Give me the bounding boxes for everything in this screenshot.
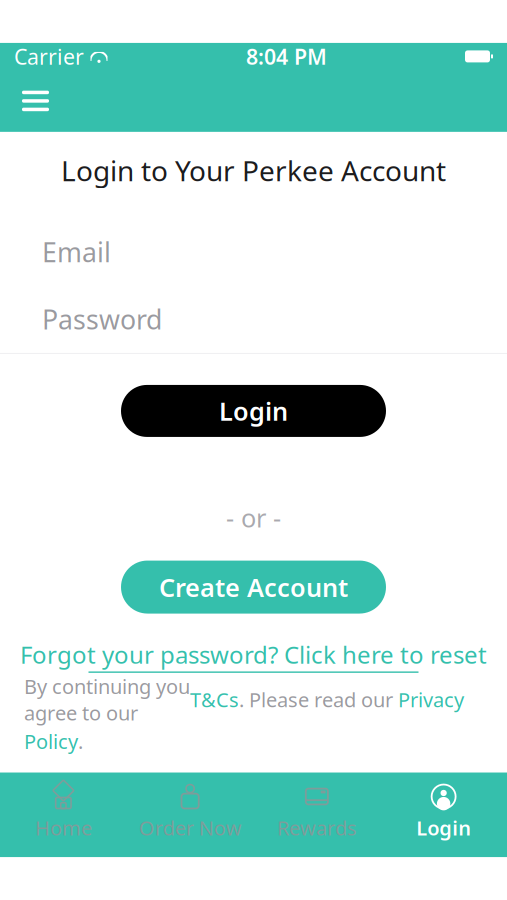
button[interactable]: Forgot your password? Click here to rese… [20, 639, 487, 673]
staticText: Create Account [159, 570, 348, 604]
staticText: T&Cs [190, 686, 239, 713]
staticText: Login [416, 814, 471, 841]
staticText: Email [42, 234, 111, 269]
button[interactable]: Privacy [398, 686, 464, 713]
staticText: Password [42, 301, 162, 337]
button[interactable]: Order Now [127, 772, 254, 857]
button[interactable]: Home [0, 772, 127, 857]
staticText: By continuing you agree to our [24, 673, 190, 726]
button[interactable]: Login [121, 385, 386, 437]
staticText: Rewards [277, 814, 357, 841]
staticText: Login to Your Perkee Account [61, 152, 446, 189]
staticText: Login [219, 394, 288, 428]
button[interactable]: Policy [24, 728, 78, 755]
button[interactable]: Create Account [121, 561, 386, 614]
staticText: 8:04 PM [246, 42, 327, 71]
staticText: Order Now [139, 814, 242, 841]
staticText: Forgot your password? Click here to rese… [20, 639, 487, 670]
staticText: - or - [226, 501, 281, 534]
staticText: . Please read our [239, 686, 398, 713]
button[interactable]: Menu [12, 83, 59, 119]
staticText: Policy [24, 728, 78, 755]
staticText: Home [35, 814, 92, 841]
staticText: . [78, 728, 83, 755]
button[interactable]: Rewards [253, 772, 380, 857]
staticText: Carrier [14, 42, 84, 71]
button[interactable]: Login [380, 772, 507, 857]
staticText: Privacy [398, 686, 464, 713]
button[interactable]: T&Cs [190, 686, 239, 713]
